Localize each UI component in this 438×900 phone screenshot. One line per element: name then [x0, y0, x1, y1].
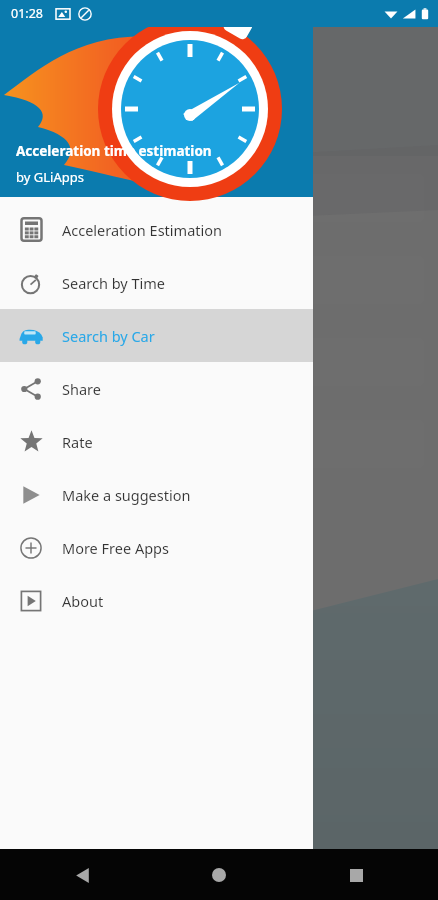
button[interactable]: Search by Time	[0, 256, 313, 309]
button[interactable]: Search by Car	[0, 309, 313, 362]
staticText: Share	[62, 379, 101, 399]
button[interactable]: Recent apps	[336, 855, 376, 895]
staticText: Search by Car	[62, 326, 155, 346]
staticText: Rate	[62, 432, 93, 452]
button[interactable]: Acceleration Estimation	[0, 203, 313, 256]
button[interactable]: Rate	[0, 415, 313, 468]
staticText: Make a suggestion	[62, 485, 191, 505]
staticText: About	[62, 591, 104, 611]
button[interactable]: Share	[0, 362, 313, 415]
button[interactable]: Home	[199, 855, 239, 895]
staticText: More Free Apps	[62, 538, 169, 558]
button[interactable]: Back	[62, 855, 102, 895]
button[interactable]: Make a suggestion	[0, 468, 313, 521]
button[interactable]: About	[0, 574, 313, 627]
staticText: Acceleration time estimation	[16, 142, 212, 160]
staticText: Search by Time	[62, 273, 165, 293]
button[interactable]: More Free Apps	[0, 521, 313, 574]
staticText: by GLiApps	[16, 168, 84, 186]
staticText: 01:28	[11, 5, 43, 22]
staticText: Acceleration Estimation	[62, 220, 222, 240]
